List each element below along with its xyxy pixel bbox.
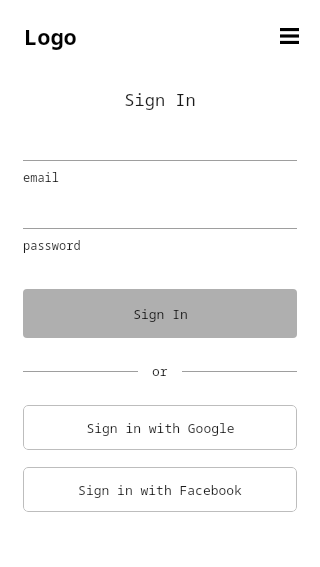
staticText: Sign in with Google [86, 419, 235, 437]
button[interactable]: Sign In [23, 289, 297, 338]
staticText: password [23, 237, 81, 253]
staticText: email [23, 169, 60, 185]
staticText: Logo [24, 21, 77, 51]
button[interactable]: Logo [24, 21, 77, 51]
staticText: or [152, 362, 168, 380]
button[interactable]: email [23, 160, 297, 207]
staticText: Sign In [124, 88, 196, 111]
staticText: Sign in with Facebook [78, 481, 242, 499]
button[interactable]: Sign in with Facebook [23, 467, 297, 512]
button[interactable]: Sign in with Google [23, 405, 297, 450]
button[interactable]: Open navigation menu [267, 14, 311, 58]
staticText: Sign In [133, 305, 188, 323]
button[interactable]: password [23, 228, 297, 275]
